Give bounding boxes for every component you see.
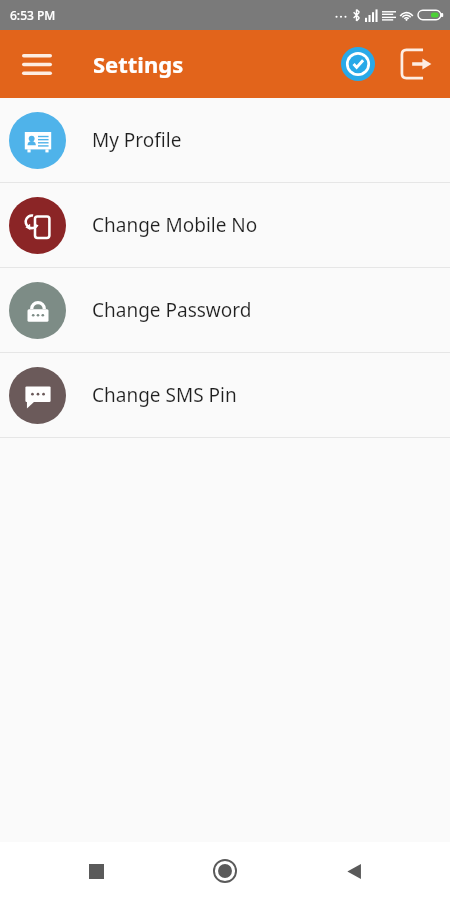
button[interactable]: Change Mobile No: [0, 183, 450, 267]
button[interactable]: Back: [328, 845, 380, 897]
staticText: Settings: [93, 49, 184, 79]
staticText: Change Password: [92, 297, 252, 323]
button[interactable]: My Profile: [0, 98, 450, 182]
button[interactable]: Change Password: [0, 268, 450, 352]
button[interactable]: Home: [199, 845, 251, 897]
button[interactable]: Change SMS Pin: [0, 353, 450, 437]
button[interactable]: Verified status: [332, 38, 384, 90]
staticText: Change SMS Pin: [92, 382, 237, 408]
staticText: My Profile: [92, 127, 182, 153]
button[interactable]: Open navigation menu: [10, 37, 64, 91]
button[interactable]: Logout: [390, 38, 442, 90]
staticText: 6:53 PM: [10, 7, 56, 23]
button[interactable]: Recent apps: [70, 845, 122, 897]
staticText: Change Mobile No: [92, 212, 258, 238]
